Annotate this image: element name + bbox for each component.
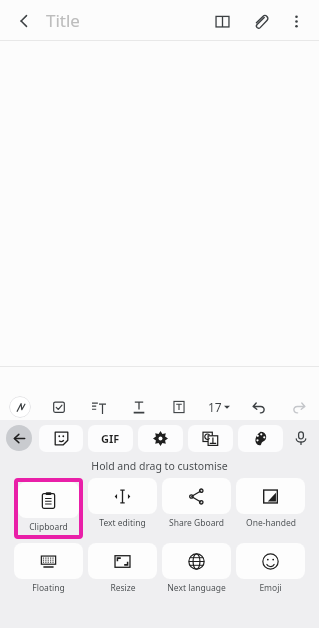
button[interactable]: Reading view <box>205 4 239 38</box>
button[interactable]: 17 <box>208 399 230 415</box>
button[interactable]: Undo <box>248 396 270 418</box>
staticText: GIF <box>101 431 120 446</box>
button[interactable]: GIF <box>88 425 133 452</box>
staticText: Next language <box>167 582 226 594</box>
button[interactable]: Floating <box>14 543 83 596</box>
button[interactable]: Resize <box>88 543 157 596</box>
button[interactable]: Voice input <box>289 426 313 450</box>
staticText: Hold and drag to customise <box>0 459 319 473</box>
button[interactable]: Checklist <box>48 396 70 418</box>
button[interactable]: Settings <box>138 425 183 452</box>
button[interactable]: One-handed <box>236 478 305 531</box>
button[interactable]: Close toolbar <box>6 425 32 451</box>
staticText: Title <box>46 9 80 32</box>
staticText: Emoji <box>259 582 282 594</box>
staticText: Floating <box>32 582 65 594</box>
staticText: Clipboard <box>29 521 68 533</box>
button[interactable]: More options <box>279 4 313 38</box>
staticText: Text editing <box>99 517 146 529</box>
button[interactable]: Emoji <box>236 543 305 596</box>
staticText: 17 <box>208 399 222 415</box>
button[interactable]: Attach <box>243 4 277 38</box>
button[interactable]: Handwriting <box>9 396 31 418</box>
button[interactable]: Text format <box>128 396 150 418</box>
button[interactable]: Themes <box>238 425 283 452</box>
button[interactable]: Back <box>6 3 42 39</box>
button[interactable]: Translate <box>188 425 233 452</box>
button[interactable]: Next language <box>162 543 231 596</box>
staticText: Share Gboard <box>169 517 224 529</box>
button[interactable]: Text box <box>168 396 190 418</box>
button[interactable]: Paragraph <box>88 396 110 418</box>
staticText: Resize <box>110 582 136 594</box>
button[interactable]: Clipboard <box>18 482 79 535</box>
button[interactable]: Share Gboard <box>162 478 231 531</box>
button[interactable]: Redo <box>288 396 310 418</box>
staticText: One-handed <box>246 517 296 529</box>
button[interactable]: Text editing <box>88 478 157 531</box>
button[interactable]: Stickers <box>39 425 83 452</box>
